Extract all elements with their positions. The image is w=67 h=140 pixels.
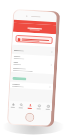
button[interactable] xyxy=(11,60,54,68)
other: Home xyxy=(25,113,34,122)
button[interactable] xyxy=(12,48,55,54)
button[interactable] xyxy=(11,54,55,62)
button[interactable] xyxy=(10,82,53,90)
button[interactable]: Add xyxy=(25,102,34,110)
button[interactable]: Profile xyxy=(43,103,52,111)
button[interactable] xyxy=(11,66,54,74)
button[interactable]: Home xyxy=(9,101,17,109)
button[interactable] xyxy=(12,77,26,81)
button[interactable]: Search xyxy=(17,101,25,109)
button[interactable]: Warning xyxy=(16,36,53,44)
button[interactable]: Alerts xyxy=(34,102,43,111)
other: Warning xyxy=(17,38,21,41)
